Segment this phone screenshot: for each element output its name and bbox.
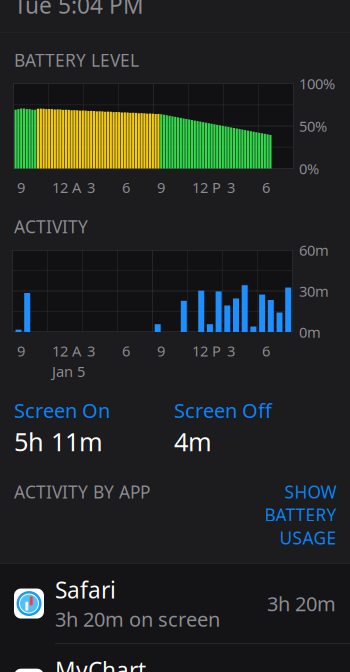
staticText: 30m	[299, 281, 329, 301]
staticText: Tue 5:04 PM	[14, 0, 144, 20]
staticText: 12 P	[192, 341, 221, 360]
staticText: MyChart	[55, 655, 146, 672]
staticText: 6	[122, 341, 130, 360]
staticText: 3	[87, 341, 95, 360]
button[interactable]: SHOW BATTERY USAGE	[210, 480, 336, 549]
staticText: 12 A	[52, 341, 81, 360]
staticText: Safari	[55, 575, 116, 605]
staticText: 12 A	[52, 177, 81, 197]
staticText: 0%	[299, 159, 319, 178]
staticText: 9	[157, 177, 165, 197]
staticText: 9	[17, 341, 25, 360]
staticText: SHOW BATTERY USAGE	[264, 480, 336, 549]
staticText: 3h 20m	[267, 590, 336, 617]
staticText: 6	[262, 177, 270, 197]
staticText: 6	[122, 177, 130, 197]
staticText: 3	[227, 177, 235, 197]
staticText: BATTERY LEVEL	[14, 48, 139, 71]
staticText: 100%	[299, 74, 335, 93]
staticText: 3h 20m on screen	[55, 606, 220, 632]
staticText: 12 P	[192, 177, 221, 197]
staticText: 4m	[174, 424, 212, 458]
staticText: 5h 11m	[14, 424, 103, 458]
staticText: ACTIVITY	[14, 215, 88, 238]
staticText: 50%	[299, 116, 327, 136]
staticText: 3	[227, 341, 235, 360]
staticText: 6	[262, 341, 270, 360]
staticText: 3	[87, 177, 95, 197]
staticText: 9	[17, 177, 25, 197]
staticText: 0m	[299, 322, 321, 342]
staticText: Screen Off	[174, 397, 272, 424]
staticText: Screen On	[14, 397, 110, 424]
staticText: 60m	[299, 240, 329, 260]
staticText: ACTIVITY BY APP	[14, 480, 150, 503]
staticText: 9	[157, 341, 165, 360]
staticText: Jan 5	[52, 361, 85, 381]
button[interactable]: MyChart	[0, 644, 350, 672]
button[interactable]: Safari	[0, 564, 350, 643]
